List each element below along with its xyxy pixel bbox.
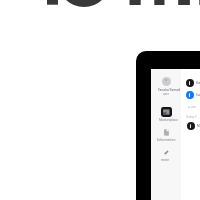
staticText: a me	[188, 105, 196, 109]
button[interactable]: Conversation one	[186, 79, 200, 87]
staticText: Today 1	[186, 115, 197, 119]
staticText: Tanaka Yamad	[158, 88, 180, 92]
staticText: user	[163, 92, 169, 96]
button[interactable]: Conversation two	[186, 91, 200, 99]
staticText: Suzu	[196, 93, 200, 97]
staticText: Kato	[196, 81, 200, 85]
staticText: Information	[157, 138, 176, 142]
button[interactable]: Settings	[162, 149, 171, 156]
staticText: more	[161, 158, 170, 162]
staticText: Mori	[197, 124, 200, 128]
button[interactable]: Profile avatar	[162, 77, 171, 86]
button[interactable]: Marketplace	[161, 107, 172, 117]
button[interactable]: Documents	[162, 128, 171, 136]
staticText: Marketplace	[159, 118, 178, 122]
button[interactable]: Conversation three	[187, 122, 200, 130]
